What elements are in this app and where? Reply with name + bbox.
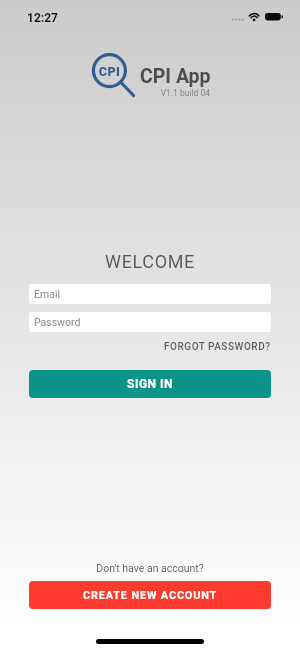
staticText: FORGOT PASSWORD? — [164, 341, 271, 353]
button[interactable]: FORGOT PASSWORD? — [156, 336, 271, 358]
button[interactable]: SIGN IN — [29, 370, 271, 398]
button[interactable]: CREATE NEW ACCOUNT — [29, 581, 271, 609]
staticText: Email — [34, 288, 60, 300]
staticText: WELCOME — [0, 251, 300, 272]
staticText: V1.1 build 04 — [121, 88, 210, 98]
staticText: 12:27 — [27, 11, 58, 25]
button[interactable]: Email — [29, 284, 271, 304]
staticText: CPI App — [140, 65, 211, 88]
staticText: Password — [34, 316, 81, 328]
staticText: SIGN IN — [127, 377, 174, 391]
staticText: Don't have an account? — [0, 562, 300, 574]
staticText: CREATE NEW ACCOUNT — [83, 589, 218, 602]
staticText: CPI — [93, 64, 126, 79]
button[interactable]: Password — [29, 312, 271, 332]
